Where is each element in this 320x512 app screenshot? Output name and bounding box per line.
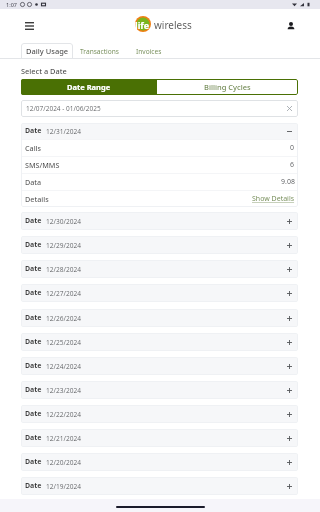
button[interactable]: Date xyxy=(21,453,298,471)
staticText: 12/25/2024 xyxy=(46,338,82,347)
staticText: Date xyxy=(25,385,42,395)
staticText: Date xyxy=(25,433,42,443)
button[interactable]: Date xyxy=(21,212,298,230)
button[interactable]: Date xyxy=(21,309,298,327)
staticText: 12/30/2024 xyxy=(46,217,82,226)
staticText: 6 xyxy=(290,160,295,170)
button[interactable]: Account xyxy=(283,18,299,34)
button[interactable]: Date xyxy=(21,357,298,375)
staticText: 12/28/2024 xyxy=(46,265,82,274)
button[interactable]: Date xyxy=(21,429,298,447)
other: Expand xyxy=(285,314,293,322)
staticText: Transactions xyxy=(80,47,120,56)
other: Expand xyxy=(285,241,293,249)
staticText: Date xyxy=(25,481,42,491)
button[interactable]: Date xyxy=(21,284,298,302)
button[interactable]: Show Details xyxy=(252,194,295,204)
staticText: Date xyxy=(25,126,42,136)
staticText: wireless xyxy=(154,18,192,32)
staticText: 12/23/2024 xyxy=(46,386,82,395)
button[interactable]: Date Range xyxy=(21,79,157,95)
button[interactable]: Open navigation menu xyxy=(20,17,38,35)
other: Expand xyxy=(285,386,293,394)
other: Expand xyxy=(285,265,293,273)
staticText: life xyxy=(135,19,150,31)
other: Collapse xyxy=(285,127,293,135)
staticText: 9.08 xyxy=(281,177,295,187)
button[interactable]: Date xyxy=(21,123,298,139)
button[interactable]: Date xyxy=(21,333,298,351)
other: Expand xyxy=(285,482,293,490)
staticText: SMS/MMS xyxy=(25,160,60,170)
staticText: Date xyxy=(25,288,42,298)
other: Expand xyxy=(285,458,293,466)
staticText: Date xyxy=(25,264,42,274)
button[interactable]: Date xyxy=(21,477,298,495)
button[interactable]: Clear xyxy=(286,105,293,112)
staticText: Date xyxy=(25,457,42,467)
button[interactable]: Invoices xyxy=(127,43,171,59)
staticText: Select a Date xyxy=(21,66,67,76)
staticText: 12/07/2024 - 01/06/2025 xyxy=(26,104,101,113)
staticText: Date xyxy=(25,409,42,419)
staticText: Calls xyxy=(25,143,42,153)
button[interactable]: 12/07/2024 - 01/06/2025 xyxy=(21,100,298,117)
other: Expand xyxy=(285,362,293,370)
button[interactable]: Transactions xyxy=(73,43,127,59)
staticText: 12/21/2024 xyxy=(46,434,82,443)
staticText: Billing Cycles xyxy=(204,82,251,92)
button[interactable]: Billing Cycles xyxy=(157,79,298,95)
staticText: Date xyxy=(25,216,42,226)
staticText: 12/31/2024 xyxy=(46,127,82,136)
staticText: Date xyxy=(25,240,42,250)
staticText: 12/24/2024 xyxy=(46,362,82,371)
button[interactable]: Date xyxy=(21,381,298,399)
button[interactable]: Date xyxy=(21,260,298,278)
other: Expand xyxy=(285,289,293,297)
staticText: Date xyxy=(25,361,42,371)
staticText: Show Details xyxy=(252,194,295,204)
staticText: 12/19/2024 xyxy=(46,482,82,491)
staticText: Date Range xyxy=(67,82,111,92)
staticText: 12/20/2024 xyxy=(46,458,82,467)
staticText: 12/22/2024 xyxy=(46,410,82,419)
staticText: Details xyxy=(25,194,49,204)
staticText: Date xyxy=(25,313,42,323)
other: Expand xyxy=(285,434,293,442)
other: Expand xyxy=(285,410,293,418)
staticText: Data xyxy=(25,177,42,187)
button[interactable]: Date xyxy=(21,405,298,423)
staticText: 0 xyxy=(290,143,295,153)
button[interactable]: Daily Usage xyxy=(21,43,73,59)
other: Expand xyxy=(285,338,293,346)
staticText: Daily Usage xyxy=(26,46,69,56)
staticText: 1:07 xyxy=(6,1,17,8)
staticText: Date xyxy=(25,337,42,347)
staticText: 12/26/2024 xyxy=(46,314,82,323)
staticText: Invoices xyxy=(136,47,162,56)
button[interactable]: Date xyxy=(21,236,298,254)
staticText: 12/29/2024 xyxy=(46,241,82,250)
staticText: 12/27/2024 xyxy=(46,289,82,298)
other: Expand xyxy=(285,217,293,225)
